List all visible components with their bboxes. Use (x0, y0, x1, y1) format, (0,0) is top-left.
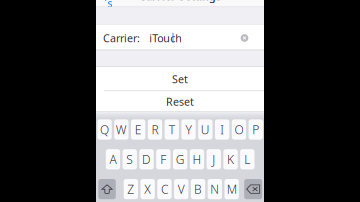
button[interactable]: F (156, 149, 170, 169)
button[interactable]: O (232, 119, 246, 140)
button[interactable]: Set (96, 67, 264, 91)
staticText: Carrier: (103, 31, 140, 45)
staticText: P (252, 121, 259, 137)
staticText: S (126, 151, 133, 167)
staticText: L (244, 151, 250, 167)
button[interactable]: G (173, 149, 187, 169)
staticText: J (212, 151, 215, 167)
button[interactable]: P (249, 119, 263, 140)
staticText: R (151, 121, 158, 137)
button[interactable]: D (139, 149, 154, 169)
button[interactable]: K (223, 149, 238, 169)
button[interactable]: T (165, 119, 179, 140)
staticText: H (192, 151, 201, 167)
button[interactable]: I (215, 119, 229, 140)
staticText: K (227, 151, 234, 167)
staticText: B (194, 181, 202, 197)
staticText: iTouch (149, 31, 182, 45)
button[interactable]: Q (97, 119, 112, 140)
button[interactable]: U (198, 119, 212, 140)
staticText: M (227, 181, 237, 197)
button[interactable]: H (190, 149, 204, 169)
staticText: U (201, 121, 210, 137)
button[interactable]: V (174, 179, 188, 199)
staticText: Y (186, 121, 192, 137)
staticText: V (178, 181, 185, 197)
staticText: Set (172, 72, 188, 86)
button[interactable]: E (131, 119, 145, 140)
staticText: F (160, 151, 166, 167)
staticText: Q (100, 121, 109, 137)
button[interactable]: N (208, 179, 222, 199)
button[interactable]: Reset (96, 91, 264, 112)
button[interactable]: M (224, 179, 239, 199)
staticText: O (234, 121, 243, 137)
staticText: I (220, 121, 224, 137)
button[interactable]: iTouch (149, 31, 225, 45)
button[interactable]: C (157, 179, 172, 199)
button[interactable]: L (240, 149, 254, 169)
button[interactable]: A (106, 149, 120, 169)
button[interactable]: R (148, 119, 162, 140)
staticText: G (176, 151, 185, 167)
button[interactable]: Clear text (237, 30, 252, 45)
staticText: C (161, 181, 168, 197)
staticText: E (135, 121, 142, 137)
staticText: N (210, 181, 219, 197)
button[interactable]: Z (124, 179, 138, 199)
staticText: A (109, 151, 116, 167)
button[interactable]: S (123, 149, 137, 169)
button[interactable]: J (207, 149, 221, 169)
button[interactable]: Back to Settings (103, 0, 149, 2)
button[interactable]: B (191, 179, 205, 199)
staticText: X (144, 181, 151, 197)
button[interactable]: W (114, 119, 128, 140)
button[interactable]: Y (181, 119, 196, 140)
staticText: Carrier Settings (139, 0, 221, 3)
button[interactable]: Shift (98, 179, 116, 199)
staticText: Settings (107, 0, 147, 10)
staticText: W (116, 121, 127, 137)
button[interactable]: Delete (244, 179, 262, 199)
staticText: T (169, 121, 175, 137)
staticText: Z (127, 181, 134, 197)
button[interactable]: X (140, 179, 155, 199)
staticText: Reset (166, 94, 194, 109)
staticText: D (142, 151, 151, 167)
